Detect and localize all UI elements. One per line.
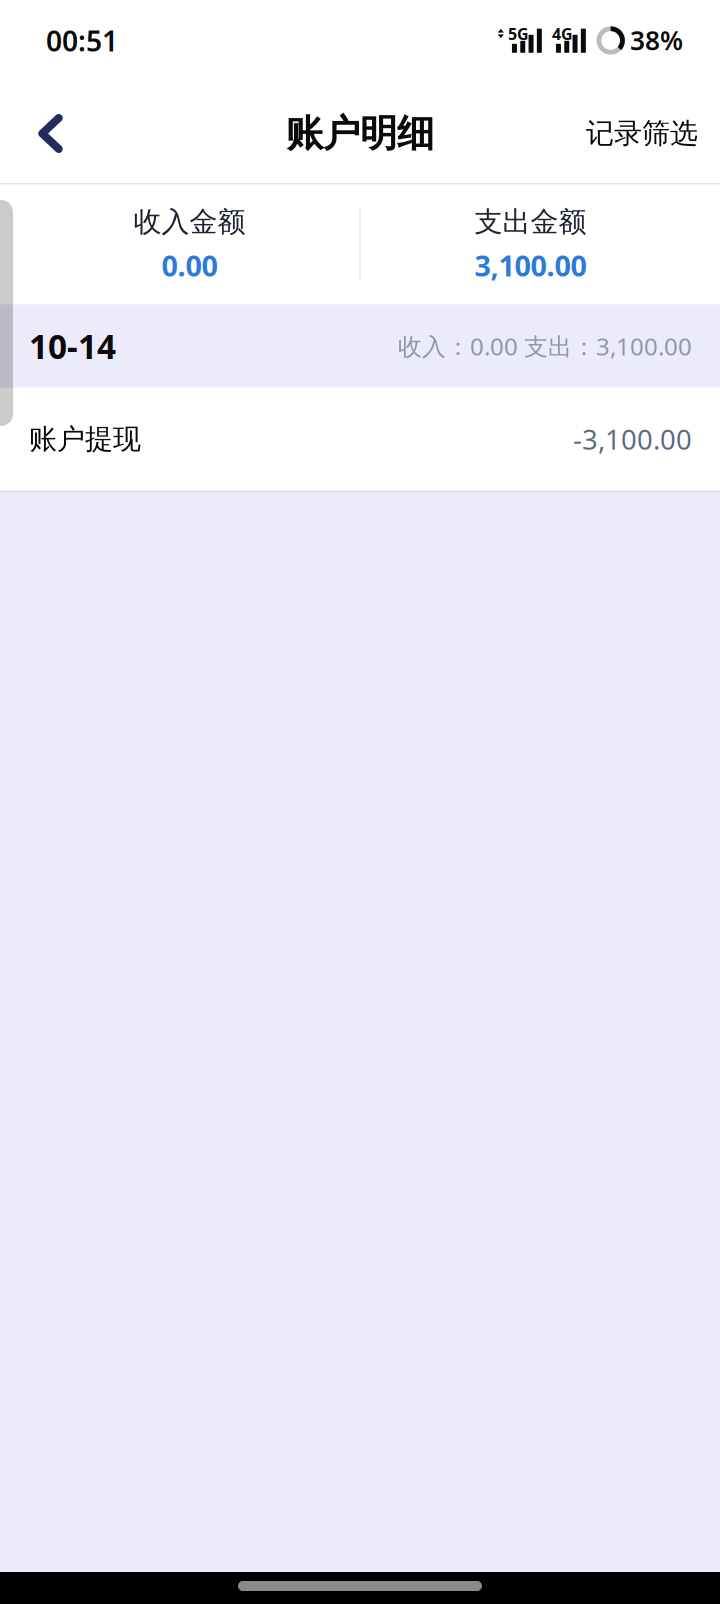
button[interactable]: 记录筛选 [566, 86, 720, 181]
staticText: 记录筛选 [586, 116, 698, 151]
staticText: 4G [552, 23, 573, 44]
staticText: 支出金额 [474, 205, 586, 239]
button[interactable]: 账户提现 [0, 388, 720, 491]
staticText: 收入：0.00 支出：3,100.00 [398, 330, 692, 362]
staticText: 00:51 [46, 22, 118, 59]
staticText: -3,100.00 [573, 421, 692, 457]
button[interactable]: Back [12, 86, 88, 181]
staticText: 账户提现 [29, 422, 141, 456]
button[interactable]: 10-14 [0, 305, 720, 388]
staticText: 0.00 [161, 246, 217, 284]
staticText: 10-14 [29, 324, 116, 368]
staticText: 账户明细 [286, 111, 434, 156]
staticText: 5G [508, 23, 529, 44]
staticText: 收入金额 [133, 205, 245, 239]
staticText: 38% [630, 23, 683, 57]
staticText: 3,100.00 [474, 246, 586, 284]
